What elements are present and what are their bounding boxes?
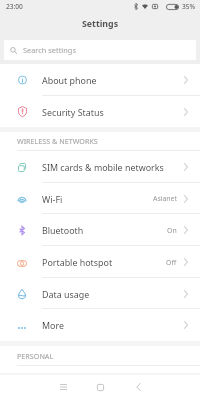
staticText: On xyxy=(167,226,177,235)
button[interactable]: About phone xyxy=(0,64,200,96)
button[interactable]: Back xyxy=(126,375,150,399)
button[interactable]: Portable hotspot xyxy=(0,246,200,278)
button[interactable]: Search settings xyxy=(4,40,196,60)
staticText: More xyxy=(42,319,64,331)
button[interactable]: Menu xyxy=(51,375,75,399)
staticText: Wi-Fi xyxy=(42,193,63,205)
button[interactable]: Home xyxy=(88,375,112,399)
staticText: Settings xyxy=(82,18,119,30)
button[interactable]: Bluetooth xyxy=(0,214,200,246)
staticText: About phone xyxy=(42,74,97,86)
staticText: Portable hotspot xyxy=(42,256,113,268)
staticText: 35% xyxy=(182,2,196,11)
button[interactable]: Wi-Fi xyxy=(0,183,200,214)
staticText: WIRELESS & NETWORKS xyxy=(17,136,98,146)
button[interactable]: More xyxy=(0,309,200,341)
staticText: SIM cards & mobile networks xyxy=(42,161,164,173)
staticText: 23:00 xyxy=(6,2,23,11)
staticText: Off xyxy=(166,258,177,267)
staticText: Security Status xyxy=(42,106,104,118)
staticText: Asianet xyxy=(153,194,177,203)
staticText: Search settings xyxy=(23,45,76,55)
button[interactable]: Data usage xyxy=(0,278,200,309)
staticText: Data usage xyxy=(42,288,90,300)
button[interactable]: SIM cards & mobile networks xyxy=(0,151,200,183)
staticText: Bluetooth xyxy=(42,224,84,236)
staticText: PERSONAL xyxy=(17,351,54,361)
button[interactable]: Security Status xyxy=(0,96,200,127)
